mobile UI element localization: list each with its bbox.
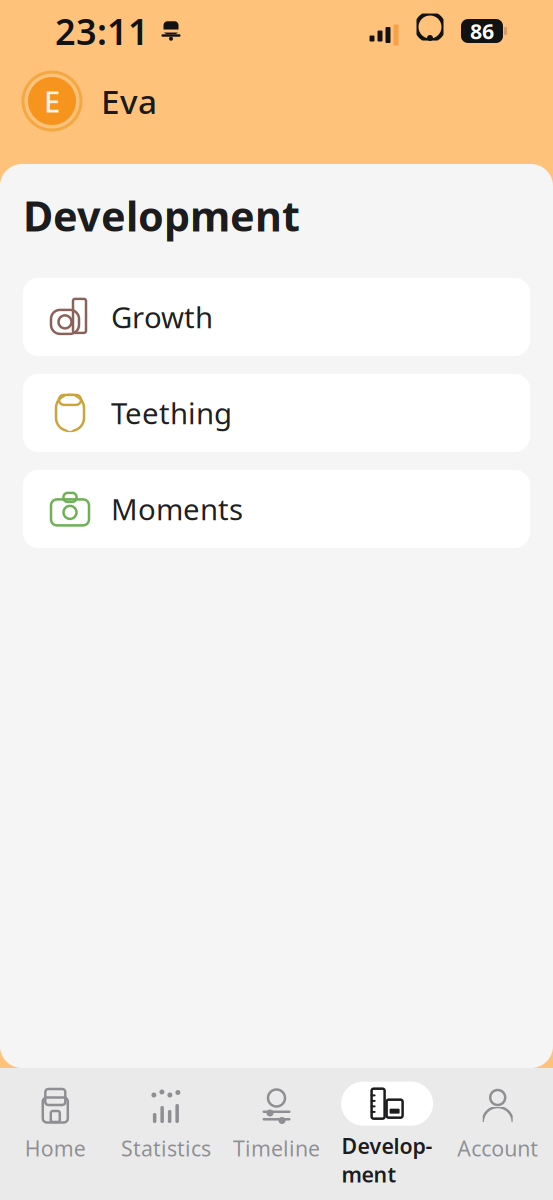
staticText: Home — [25, 1134, 86, 1162]
button[interactable]: Teething — [23, 374, 530, 452]
staticText: Development — [342, 1132, 433, 1188]
button[interactable]: Development — [332, 1068, 442, 1200]
staticText: Moments — [111, 489, 243, 528]
button[interactable]: Statistics — [111, 1068, 221, 1200]
button[interactable]: Growth — [23, 278, 530, 356]
button[interactable]: E — [23, 72, 157, 130]
staticText: 86 — [470, 17, 494, 45]
button[interactable]: Moments — [23, 470, 530, 548]
staticText: Teething — [111, 393, 232, 432]
staticText: E — [44, 81, 60, 120]
staticText: Timeline — [233, 1134, 320, 1162]
staticText: Eva — [101, 79, 157, 123]
staticText: Development — [23, 188, 300, 243]
button[interactable]: Account — [442, 1068, 553, 1200]
staticText: Statistics — [121, 1134, 211, 1162]
button[interactable]: Home — [0, 1068, 111, 1200]
button[interactable]: Timeline — [221, 1068, 332, 1200]
staticText: Growth — [111, 297, 213, 336]
staticText: 23:11 — [55, 7, 149, 55]
staticText: Account — [457, 1134, 538, 1162]
